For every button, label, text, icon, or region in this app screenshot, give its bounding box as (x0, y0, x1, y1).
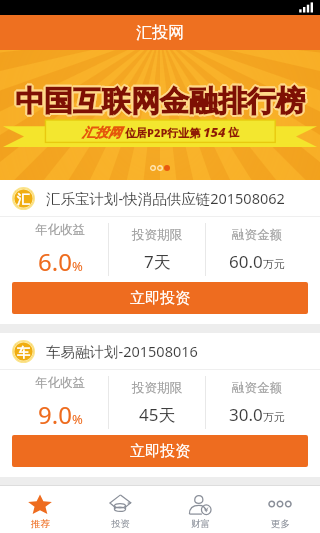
staticText: 推荐 (31, 518, 50, 530)
staticText: 中国互联网金融排行榜 (14, 82, 304, 119)
button[interactable]: 车 (12, 333, 320, 369)
staticText: 中国互联网金融排行榜 (17, 83, 307, 120)
staticText: 财富 (191, 518, 210, 530)
staticText: 融资金额 (232, 380, 282, 396)
staticText: 年化收益 (35, 222, 85, 238)
staticText: 154 (203, 123, 226, 141)
staticText: 汇投网 (82, 124, 121, 140)
staticText: 年化收益 (35, 375, 85, 391)
staticText: % (72, 410, 83, 428)
staticText: 车 (17, 344, 30, 360)
staticText: 45天 (139, 403, 176, 426)
staticText: 60.0 (229, 250, 263, 273)
staticText: 车易融计划-201508016 (46, 341, 198, 361)
staticText: 立即投资 (130, 289, 190, 308)
staticText: 中国互联网金融排行榜 (15, 85, 305, 122)
staticText: 更多 (271, 518, 290, 530)
button[interactable]: 立即投资 (12, 282, 308, 314)
staticText: 万元 (263, 410, 285, 424)
staticText: % (72, 257, 83, 275)
button[interactable]: 投资 (80, 486, 160, 533)
staticText: 30.0 (229, 403, 263, 426)
staticText: 汇 (17, 191, 30, 207)
button[interactable]: 更多 (240, 486, 320, 533)
staticText: 6.0 (38, 245, 72, 278)
button[interactable]: 财富 (160, 486, 240, 533)
button[interactable]: 汇 (12, 180, 320, 216)
staticText: 中国互联网金融排行榜 (13, 83, 303, 120)
staticText: 中国互联网金融排行榜 (15, 81, 305, 118)
staticText: 投资期限 (132, 227, 182, 243)
staticText: 汇乐宝计划-快消品供应链201508062 (46, 188, 285, 208)
staticText: 9.0 (38, 398, 72, 431)
staticText: 位居P2P行业第 (125, 125, 201, 140)
staticText: 中国互联网金融排行榜 (15, 83, 305, 120)
button[interactable]: 立即投资 (12, 435, 308, 467)
staticText: 7天 (144, 250, 171, 273)
staticText: 中国互联网金融排行榜 (14, 84, 304, 121)
staticText: 位 (228, 125, 239, 139)
staticText: 中国互联网金融排行榜 (16, 84, 306, 121)
staticText: 中国互联网金融排行榜 (16, 82, 306, 119)
staticText: 万元 (263, 257, 285, 271)
staticText: 投资期限 (132, 380, 182, 396)
button[interactable]: 推荐 (0, 486, 80, 533)
staticText: 融资金额 (232, 227, 282, 243)
staticText: 汇投网 (136, 23, 184, 43)
staticText: 投资 (111, 518, 130, 530)
staticText: 立即投资 (130, 442, 190, 461)
